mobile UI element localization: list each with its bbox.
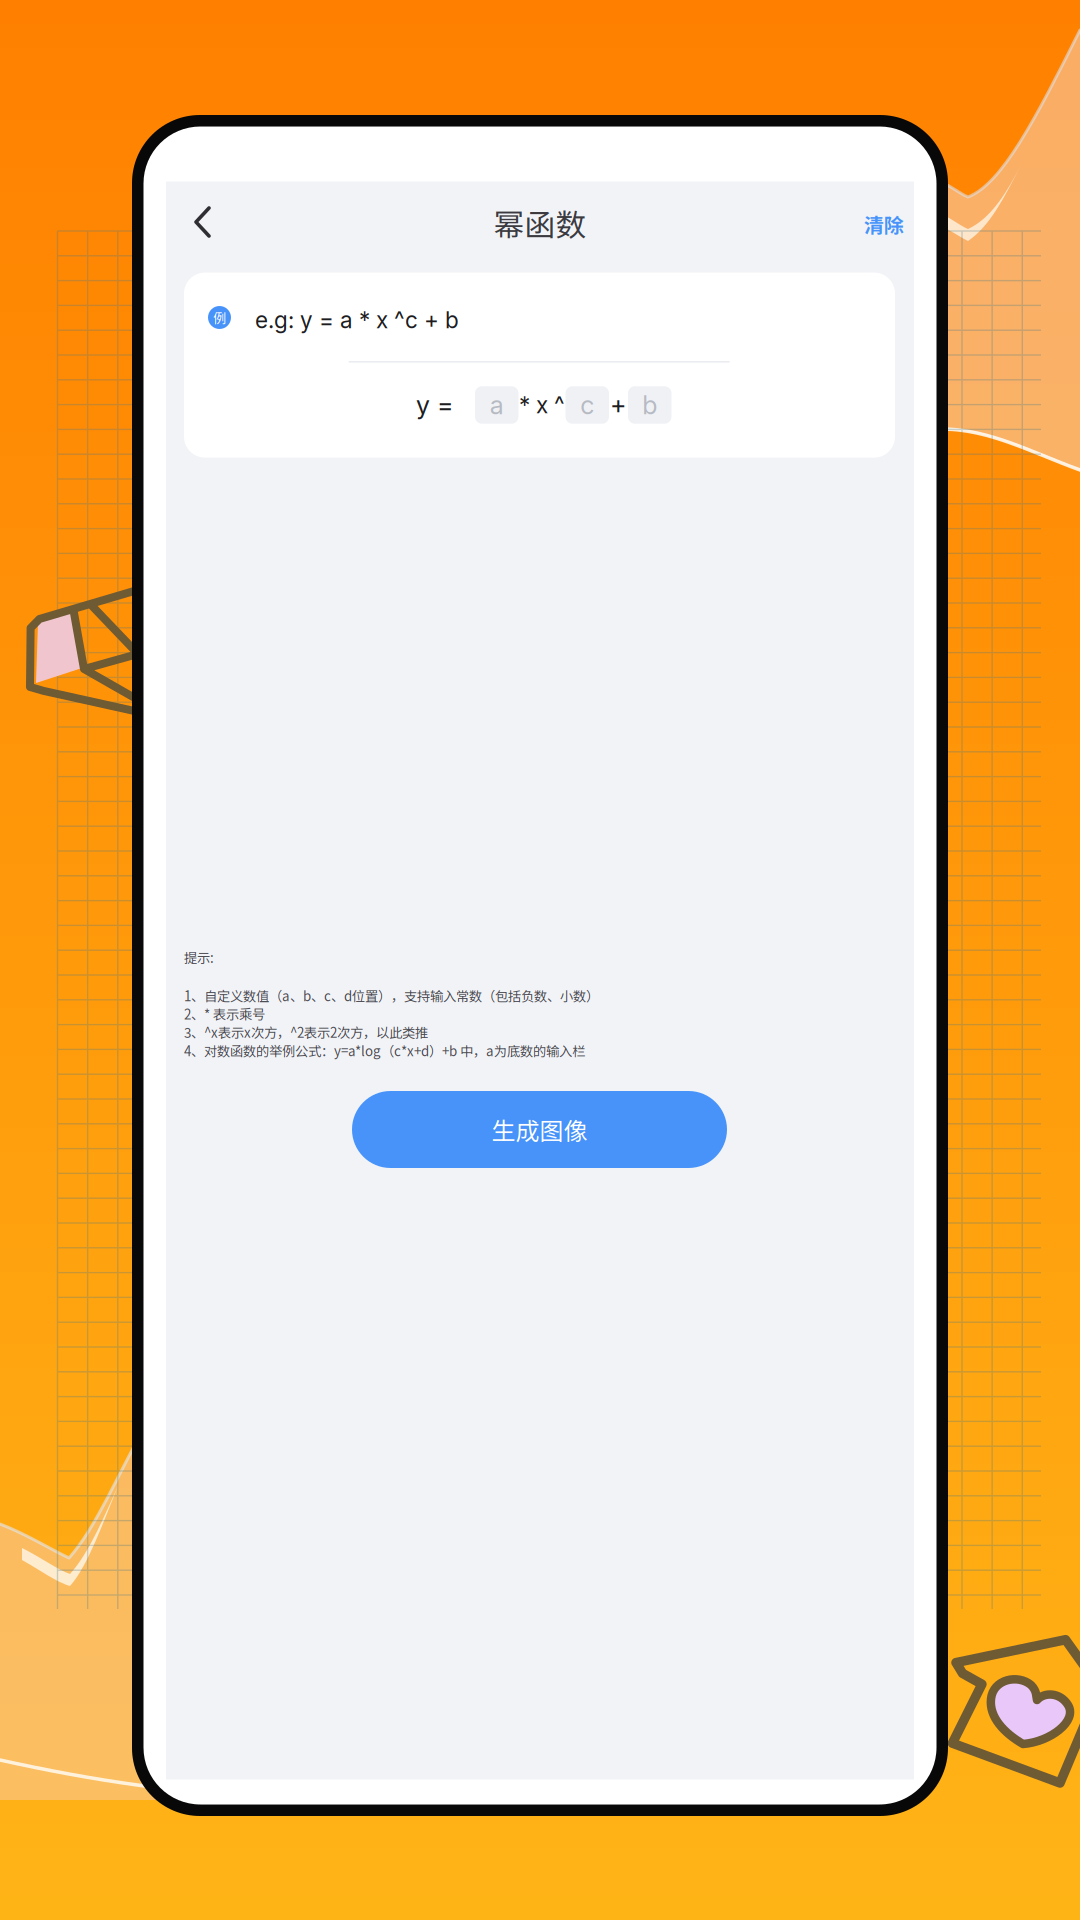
staticText: 生成图像 <box>491 1112 587 1147</box>
staticText: + <box>610 390 627 420</box>
button[interactable]: 生成图像 <box>352 1091 727 1168</box>
staticText: 1、自定义数值（a、b、c、d位置），支持输入常数（包括负数、小数） <box>184 986 599 1005</box>
button[interactable]: 清除 <box>848 193 920 255</box>
button[interactable]: Back <box>170 185 236 259</box>
staticText: 例 <box>213 308 226 327</box>
staticText: 3、^x表示x次方，^2表示2次方，以此类推 <box>184 1022 428 1042</box>
staticText: e.g: y = a * x ^c + b <box>255 306 459 334</box>
staticText: 2、* 表示乘号 <box>184 1004 265 1023</box>
staticText: a <box>490 390 504 420</box>
staticText: 清除 <box>864 209 904 238</box>
staticText: b <box>642 390 657 420</box>
staticText: y = <box>416 390 454 420</box>
staticText: c <box>580 390 594 420</box>
staticText: 提示: <box>184 947 214 967</box>
staticText: * x ^ <box>519 391 565 419</box>
staticText: 幂函数 <box>493 201 586 245</box>
staticText: 4、对数函数的举例公式：y=a*log（c*x+d）+b 中，a为底数的输入栏 <box>184 1041 585 1060</box>
